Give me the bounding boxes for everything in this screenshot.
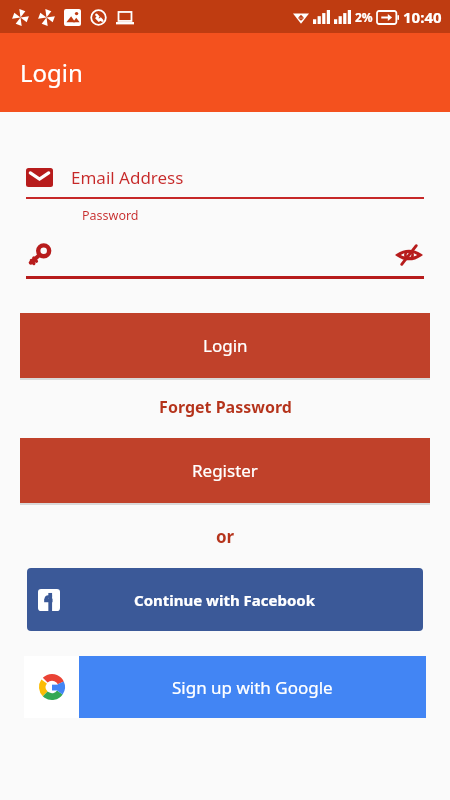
staticText: Register [192, 459, 258, 482]
other: Email [26, 168, 53, 187]
staticText: Login [20, 56, 83, 89]
button[interactable]: Forget Password [149, 392, 302, 422]
button[interactable]: Sign up with Google [24, 656, 426, 718]
staticText: Continue with Facebook [134, 590, 316, 610]
staticText: or [216, 525, 235, 548]
staticText: 10:40 [403, 7, 442, 27]
button[interactable]: Show password [394, 240, 424, 270]
button[interactable]: Continue with Facebook [27, 568, 423, 631]
staticText: Login [203, 334, 248, 357]
button[interactable]: Register [20, 438, 430, 503]
staticText: Forget Password [159, 396, 292, 418]
staticText: Sign up with Google [172, 676, 333, 699]
button[interactable]: Show password [26, 236, 424, 274]
staticText: Password [82, 207, 139, 224]
button[interactable]: Login [20, 313, 430, 378]
staticText: Email Address [71, 166, 184, 189]
staticText: 2% [355, 9, 373, 25]
button[interactable]: Email [26, 160, 424, 199]
